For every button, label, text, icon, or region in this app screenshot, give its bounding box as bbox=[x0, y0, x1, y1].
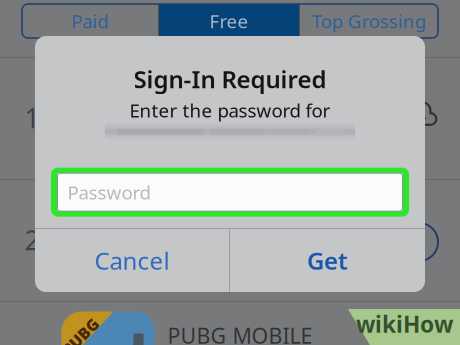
staticText: Paid bbox=[71, 9, 108, 33]
staticText: Get bbox=[307, 245, 348, 276]
staticText: PUBG MOBILE bbox=[167, 321, 312, 345]
staticText: Top Grossing bbox=[312, 9, 426, 33]
staticText: 1 bbox=[24, 100, 39, 136]
staticText: Enter the password for bbox=[129, 98, 330, 123]
staticText: 2 bbox=[24, 222, 39, 258]
button[interactable]: Cancel bbox=[35, 229, 229, 292]
button[interactable]: Top Grossing bbox=[300, 4, 438, 38]
staticText: Free bbox=[209, 9, 248, 33]
button[interactable]: 3 bbox=[0, 302, 460, 345]
button[interactable]: 2 bbox=[0, 180, 460, 301]
button[interactable]: 1 bbox=[0, 58, 460, 179]
staticText: Sign-In Required bbox=[133, 63, 326, 95]
button[interactable]: Get bbox=[230, 229, 425, 292]
button[interactable]: Paid bbox=[22, 4, 158, 38]
staticText: Cancel bbox=[94, 245, 169, 276]
staticText: wikiHow bbox=[356, 309, 453, 339]
staticText: Password bbox=[67, 180, 150, 205]
button[interactable]: Free bbox=[159, 4, 299, 38]
staticText: PUBG bbox=[58, 326, 103, 345]
